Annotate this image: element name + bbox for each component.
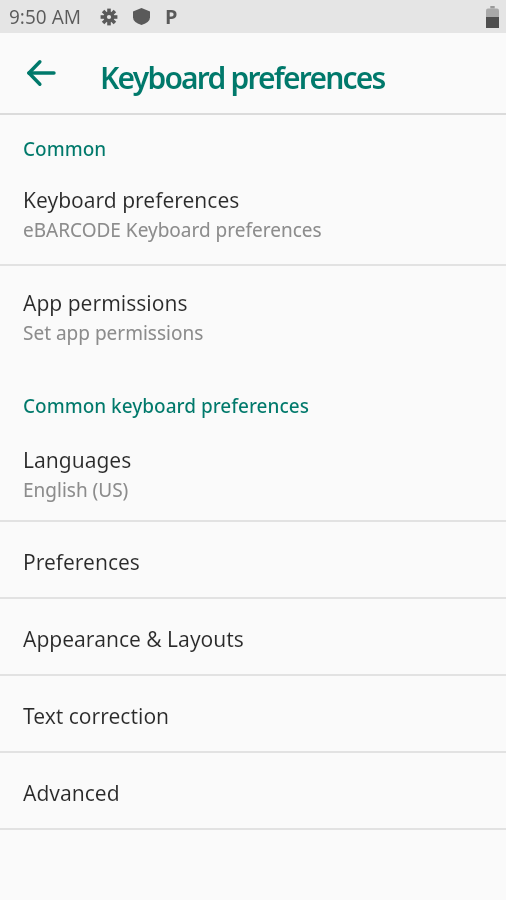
button[interactable]: Languages: [0, 420, 506, 520]
staticText: Text correction: [23, 702, 170, 731]
staticText: Advanced: [23, 779, 120, 808]
button[interactable]: Appearance & Layouts: [0, 598, 506, 674]
staticText: Appearance & Layouts: [23, 625, 244, 654]
button[interactable]: Preferences: [0, 521, 506, 597]
staticText: Keyboard preferences: [100, 57, 385, 98]
staticText: App permissions: [23, 289, 188, 318]
staticText: Languages: [23, 446, 132, 475]
staticText: P: [165, 3, 178, 30]
staticText: Preferences: [23, 548, 140, 577]
staticText: eBARCODE Keyboard preferences: [23, 217, 322, 243]
button[interactable]: [23, 55, 59, 91]
staticText: Set app permissions: [23, 320, 204, 346]
button[interactable]: Advanced: [0, 752, 506, 828]
button[interactable]: App permissions: [0, 265, 506, 361]
staticText: English (US): [23, 477, 129, 503]
button[interactable]: Text correction: [0, 675, 506, 751]
button[interactable]: Keyboard preferences: [0, 162, 506, 263]
staticText: 9:50 AM: [9, 4, 82, 30]
staticText: Keyboard preferences: [23, 186, 240, 215]
staticText: Common: [23, 136, 107, 162]
staticText: Common keyboard preferences: [23, 393, 309, 419]
